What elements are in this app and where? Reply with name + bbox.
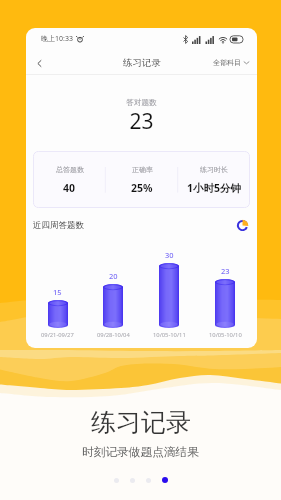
staticText: 1小时5分钟 [187, 181, 242, 195]
button[interactable]: Back [29, 53, 49, 73]
staticText: 20 [109, 271, 118, 281]
staticText: 近四周答题数 [33, 220, 84, 231]
staticText: 时刻记录做题点滴结果 [82, 445, 199, 460]
staticText: 10/05-10/10 [209, 331, 242, 339]
button[interactable]: 全部科目 [213, 58, 250, 67]
staticText: 23 [26, 107, 257, 136]
staticText: 09/28-10/04 [97, 331, 130, 339]
staticText: 30 [165, 250, 174, 260]
staticText: 09/21-09/27 [41, 331, 74, 339]
staticText: 练习记录 [91, 407, 191, 438]
staticText: 练习记录 [123, 57, 161, 69]
staticText: 40 [63, 181, 76, 195]
staticText: 10/05-10/11 [153, 331, 186, 339]
staticText: 23 [221, 266, 230, 276]
staticText: 练习时长 [200, 165, 228, 174]
staticText: 答对题数 [26, 98, 257, 107]
staticText: 25% [131, 181, 153, 195]
staticText: 总答题数 [56, 165, 84, 174]
staticText: 正确率 [132, 165, 153, 174]
staticText: 晚上10:33 [41, 34, 73, 44]
staticText: 15 [53, 287, 62, 297]
button[interactable]: Switch chart [236, 219, 249, 232]
staticText: 全部科目 [213, 58, 241, 67]
